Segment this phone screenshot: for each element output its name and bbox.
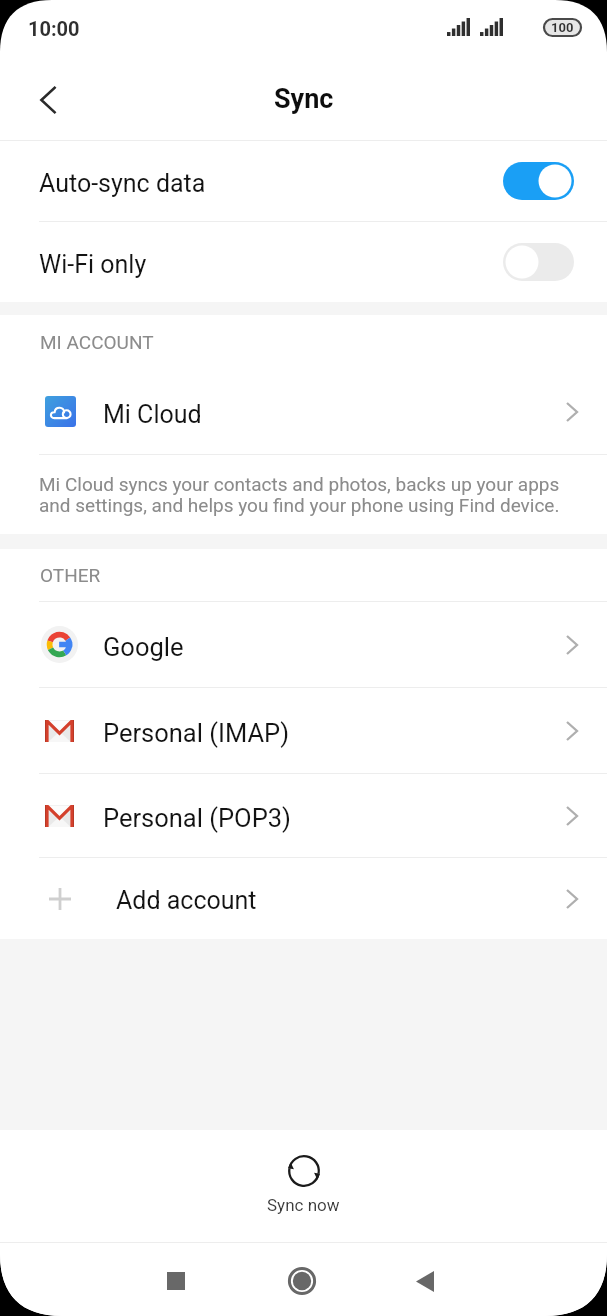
staticText: Sync [274, 83, 334, 115]
staticText: Add account [116, 886, 257, 915]
button[interactable]: Auto-sync data [0, 141, 607, 221]
button[interactable]: Recent apps [141, 1246, 211, 1316]
staticText: Auto-sync data [39, 169, 206, 198]
staticText: Sync now [267, 1195, 340, 1215]
button[interactable]: Google [0, 602, 607, 687]
button[interactable]: Back [20, 72, 76, 128]
button[interactable]: Personal (IMAP) [0, 688, 607, 773]
staticText: 10:00 [28, 17, 80, 40]
staticText: OTHER [40, 564, 101, 586]
staticText: Mi Cloud [103, 400, 202, 429]
button[interactable]: Personal (POP3) [0, 774, 607, 857]
staticText: Personal (POP3) [103, 803, 291, 833]
button[interactable]: Mi Cloud [0, 369, 607, 454]
staticText: Google [103, 632, 184, 662]
staticText: Mi Cloud syncs your contacts and photos,… [39, 473, 567, 517]
staticText: Wi-Fi only [39, 250, 147, 279]
button[interactable]: Sync now [0, 1130, 607, 1242]
staticText: MI ACCOUNT [40, 331, 154, 353]
button[interactable]: Back [390, 1246, 460, 1316]
button[interactable]: Wi-Fi only [0, 222, 607, 302]
button[interactable]: Add account [0, 858, 607, 939]
staticText: 100 [551, 20, 574, 35]
button[interactable]: Home [267, 1246, 337, 1316]
staticText: Personal (IMAP) [103, 718, 290, 748]
